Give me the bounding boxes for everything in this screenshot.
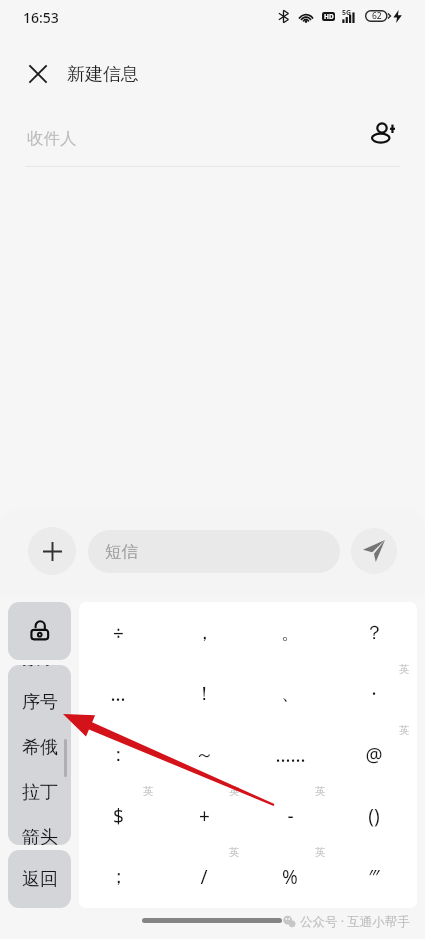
button[interactable]: Send	[351, 528, 397, 574]
button[interactable]: ……	[248, 725, 332, 785]
staticText: 英	[399, 724, 410, 737]
button[interactable]: 、	[248, 664, 332, 724]
staticText: 英	[399, 663, 410, 676]
button[interactable]: /	[162, 847, 246, 907]
staticText: 16:53	[23, 8, 59, 27]
staticText: ～	[195, 743, 214, 767]
staticText: 新建信息	[67, 63, 139, 86]
button[interactable]: 数学	[8, 665, 71, 680]
button[interactable]: …	[79, 664, 160, 724]
button[interactable]: ‴	[332, 847, 416, 907]
staticText: 返回	[22, 868, 58, 891]
staticText: 公众号 · 互通小帮手	[300, 913, 410, 930]
button[interactable]: ！	[162, 664, 246, 724]
staticText: 数学	[22, 665, 58, 670]
button[interactable]: ，	[162, 603, 246, 663]
staticText: ？	[365, 621, 384, 645]
button[interactable]: 希俄	[8, 725, 71, 769]
staticText: …	[110, 681, 126, 707]
button[interactable]: ÷	[79, 603, 160, 663]
staticText: 英	[229, 785, 240, 798]
staticText: ！	[195, 682, 214, 706]
button[interactable]: ()	[332, 786, 416, 846]
button[interactable]: 。	[248, 603, 332, 663]
button[interactable]: 短信	[88, 530, 340, 573]
staticText: 英	[229, 846, 240, 859]
staticText: 短信	[105, 541, 138, 562]
staticText: 5G	[342, 8, 352, 18]
button[interactable]: @	[332, 725, 416, 785]
staticText: ：	[109, 743, 128, 767]
button[interactable]: ；	[79, 847, 160, 907]
staticText: %	[282, 864, 298, 890]
button[interactable]: ：	[79, 725, 160, 785]
button[interactable]: ～	[162, 725, 246, 785]
button[interactable]: %	[248, 847, 332, 907]
button[interactable]: -	[248, 786, 332, 846]
staticText: ；	[109, 865, 128, 889]
staticText: ……	[275, 742, 306, 768]
staticText: -	[287, 803, 294, 829]
staticText: 英	[315, 785, 326, 798]
staticText: 英	[315, 846, 326, 859]
staticText: 希俄	[22, 736, 58, 759]
staticText: 收件人	[27, 128, 77, 149]
staticText: HD	[324, 12, 334, 21]
button[interactable]: $	[79, 786, 160, 846]
staticText: 62	[372, 10, 382, 22]
staticText: /	[200, 864, 208, 890]
button[interactable]: 箭头	[8, 815, 71, 845]
button[interactable]: Add contact	[366, 116, 400, 150]
button[interactable]: 序号	[8, 680, 71, 724]
staticText: 、	[281, 682, 300, 706]
button[interactable]: 返回	[8, 850, 71, 908]
staticText: 拉丁	[22, 781, 58, 804]
staticText: 箭头	[22, 826, 58, 845]
button[interactable]: Close	[20, 56, 56, 92]
staticText: ·	[371, 681, 377, 707]
button[interactable]: ·	[332, 664, 416, 724]
staticText: ÷	[113, 620, 124, 646]
staticText: 英	[143, 785, 154, 798]
button[interactable]: Add attachment	[28, 527, 76, 575]
staticText: ，	[195, 621, 214, 645]
staticText: 序号	[22, 691, 58, 714]
staticText: ()	[368, 803, 380, 829]
button[interactable]: ？	[332, 603, 416, 663]
staticText: 。	[281, 621, 300, 645]
staticText: @	[365, 742, 383, 768]
button[interactable]: +	[162, 786, 246, 846]
button[interactable]: 拉丁	[8, 770, 71, 814]
staticText: $	[113, 803, 124, 829]
button[interactable]: Unlock	[8, 602, 71, 660]
staticText: +	[199, 803, 210, 829]
staticText: ‴	[368, 864, 380, 890]
